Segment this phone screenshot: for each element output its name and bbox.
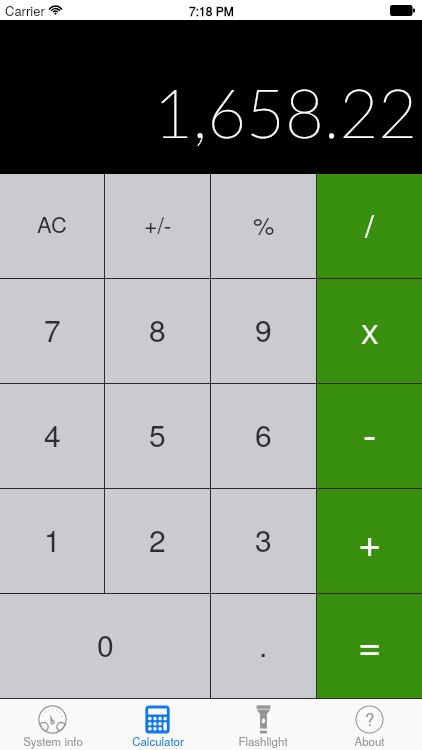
button[interactable]: 8 [105, 279, 210, 383]
button[interactable]: 4 [0, 384, 104, 488]
button[interactable]: Flashlight [210, 699, 316, 750]
staticText: 0 [97, 623, 114, 666]
staticText: 3 [255, 518, 272, 561]
staticText: = [358, 614, 382, 671]
button[interactable]: X [317, 279, 422, 383]
button[interactable]: 2 [105, 489, 210, 593]
button[interactable]: / [317, 174, 422, 278]
button[interactable]: System info [0, 699, 105, 750]
button[interactable]: 3 [211, 489, 316, 593]
staticText: 1 [44, 518, 61, 561]
staticText: Flashlight [238, 733, 288, 749]
staticText: 2 [149, 518, 166, 561]
staticText: 4 [44, 413, 61, 456]
button[interactable]: % [211, 174, 316, 278]
staticText: - [363, 404, 377, 461]
staticText: System info [23, 733, 83, 749]
staticText: . [259, 623, 268, 666]
button[interactable]: 0 [0, 594, 210, 698]
staticText: ? [365, 706, 375, 730]
button[interactable]: = [317, 594, 422, 698]
staticText: 8 [149, 308, 166, 351]
button[interactable]: 5 [105, 384, 210, 488]
staticText: 6 [255, 413, 272, 456]
button[interactable]: 1 [0, 489, 104, 593]
button[interactable]: . [211, 594, 316, 698]
button[interactable]: 7 [0, 279, 104, 383]
staticText: +/- [144, 208, 172, 241]
button[interactable]: 6 [211, 384, 316, 488]
button[interactable]: + [317, 489, 422, 593]
staticText: 9 [255, 308, 272, 351]
button[interactable]: +/- [105, 174, 210, 278]
staticText: 7:18 PM [189, 2, 234, 19]
staticText: 1,658.22 [154, 72, 418, 152]
staticText: AC [37, 208, 67, 240]
button[interactable]: AC [0, 174, 104, 278]
staticText: 5 [149, 413, 166, 456]
staticText: 7 [44, 308, 61, 351]
staticText: Calculator [132, 733, 184, 749]
staticText: Carrier [5, 1, 45, 20]
button[interactable]: Calculator [105, 699, 210, 750]
staticText: + [358, 511, 382, 568]
button[interactable]: About [316, 699, 422, 750]
staticText: X [361, 314, 379, 351]
button[interactable]: - [317, 384, 422, 488]
staticText: / [365, 201, 374, 247]
button[interactable]: 9 [211, 279, 316, 383]
staticText: About [354, 733, 385, 749]
staticText: % [253, 207, 275, 241]
